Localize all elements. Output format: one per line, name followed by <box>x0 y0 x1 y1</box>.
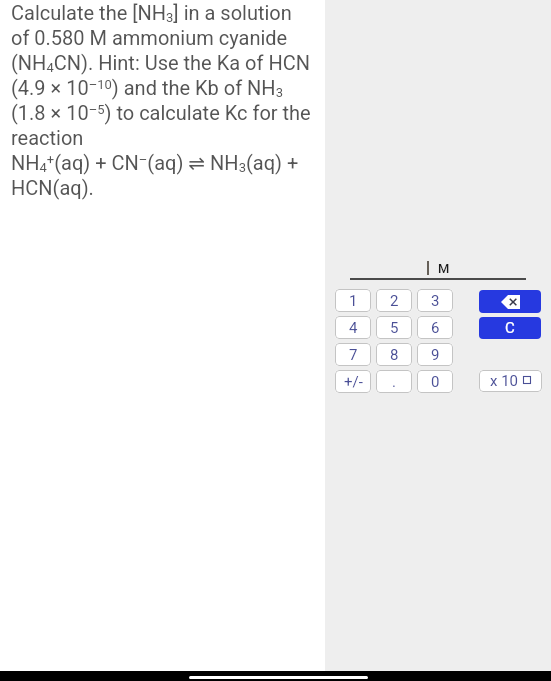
staticText: (4.9 × 10–10) and the Kb of NH3 <box>11 76 283 100</box>
button[interactable]: Answer entry field <box>350 256 526 280</box>
staticText: 1 <box>349 292 358 310</box>
staticText: . <box>392 373 396 391</box>
staticText: (NH4CN). Hint: Use the Ka of HCN <box>11 51 310 75</box>
staticText: 4 <box>349 319 358 337</box>
staticText: +/- <box>344 373 363 391</box>
button[interactable]: C <box>479 317 541 339</box>
button[interactable]: 7 <box>335 343 371 366</box>
staticText: 8 <box>390 346 399 364</box>
button[interactable]: Backspace <box>479 290 541 313</box>
staticText: Calculate the [NH3] in a solution <box>11 1 292 25</box>
button[interactable]: 9 <box>417 343 453 366</box>
button[interactable]: 3 <box>417 289 453 312</box>
staticText: 9 <box>431 346 440 364</box>
button[interactable]: 1 <box>335 289 371 312</box>
button[interactable]: 8 <box>376 343 412 366</box>
staticText: 5 <box>390 319 399 337</box>
staticText: 0 <box>431 373 440 391</box>
button[interactable]: 4 <box>335 316 371 339</box>
staticText: 2 <box>390 292 399 310</box>
button[interactable]: 5 <box>376 316 412 339</box>
staticText: HCN(aq). <box>11 176 94 199</box>
staticText: M <box>438 261 450 276</box>
staticText: 7 <box>349 346 358 364</box>
staticText: C <box>505 319 515 337</box>
staticText: NH4+(aq) + CN–(aq) ⇌ NH3(aq) + <box>11 151 299 175</box>
button[interactable]: 2 <box>376 289 412 312</box>
button[interactable]: 0 <box>417 370 453 393</box>
staticText: reaction <box>11 126 84 149</box>
button[interactable]: +/- <box>335 370 371 393</box>
staticText: (1.8 × 10–5) to calculate Kc for the <box>11 101 311 124</box>
staticText: of 0.580 M ammonium cyanide <box>11 26 288 49</box>
staticText: 3 <box>431 292 440 310</box>
button[interactable]: 6 <box>417 316 453 339</box>
staticText: 6 <box>431 319 440 337</box>
staticText: x 10 <box>490 372 519 390</box>
button[interactable]: . <box>376 370 412 393</box>
button[interactable]: x 10 <box>479 370 542 392</box>
